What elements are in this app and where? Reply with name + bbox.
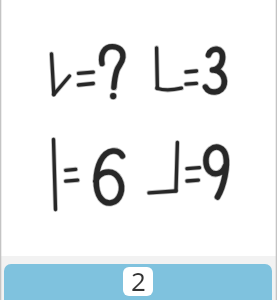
staticText: 2 [131, 267, 146, 292]
button[interactable]: 2 [123, 267, 153, 296]
button[interactable]: Puzzle: L equals 3, line equals 6, angle… [0, 0, 277, 256]
